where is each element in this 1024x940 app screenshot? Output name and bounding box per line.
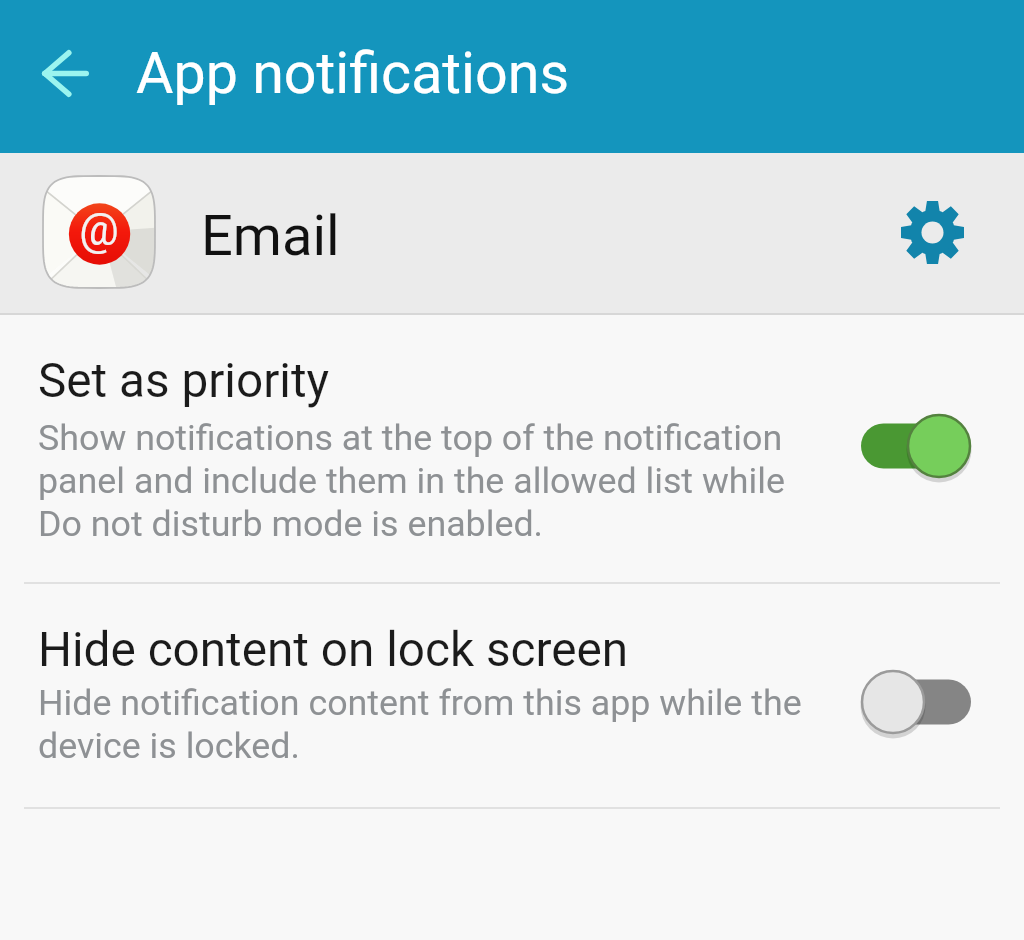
- staticText: Email: [201, 206, 340, 268]
- button[interactable]: App settings: [887, 187, 977, 277]
- staticText: App notifications: [136, 41, 570, 107]
- staticText: Hide notification content from this app …: [38, 681, 808, 767]
- button[interactable]: Switch, on: [861, 414, 971, 478]
- button[interactable]: Hide content on lock screen: [0, 584, 1024, 807]
- button[interactable]: Navigate up: [19, 27, 111, 119]
- staticText: Hide content on lock screen: [38, 622, 629, 678]
- button[interactable]: Switch, off: [861, 670, 971, 734]
- button[interactable]: Set as priority: [0, 315, 1024, 582]
- staticText: @: [79, 207, 119, 255]
- button[interactable]: @: [0, 153, 1024, 313]
- staticText: Show notifications at the top of the not…: [38, 416, 808, 545]
- staticText: Set as priority: [38, 353, 330, 409]
